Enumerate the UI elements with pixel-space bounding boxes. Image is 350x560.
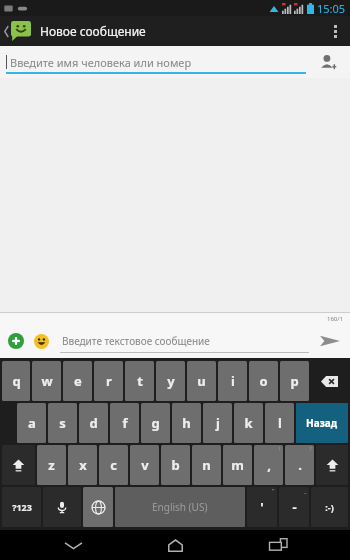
button[interactable]: u: [187, 361, 216, 401]
staticText: ,: [267, 456, 271, 474]
staticText: .: [298, 456, 302, 474]
staticText: !: [279, 445, 281, 453]
staticText: Назад: [306, 416, 338, 430]
button[interactable]: Attach: [5, 330, 27, 352]
staticText: l: [278, 414, 282, 432]
staticText: g: [151, 414, 160, 432]
staticText: -: [292, 498, 297, 516]
button[interactable]: Voice input: [43, 487, 81, 527]
staticText: z: [48, 456, 55, 474]
staticText: d: [89, 414, 98, 432]
staticText: English (US): [152, 500, 208, 514]
staticText: ?: [309, 445, 312, 453]
staticText: r: [106, 372, 112, 390]
staticText: q: [12, 372, 21, 390]
staticText: n: [202, 456, 211, 474]
button[interactable]: e: [63, 361, 92, 401]
staticText: h: [182, 414, 191, 432]
staticText: s: [59, 414, 66, 432]
staticText: i: [231, 372, 235, 390]
button[interactable]: f: [110, 403, 139, 443]
button[interactable]: Назад: [296, 403, 348, 443]
staticText: b: [171, 456, 180, 474]
button[interactable]: Введите имя человека или номер: [6, 50, 306, 74]
staticText: Введите текстовое сообщение: [62, 334, 210, 348]
staticText: x: [79, 456, 87, 474]
button[interactable]: Введите текстовое сообщение: [60, 329, 309, 353]
button[interactable]: More options: [320, 16, 350, 46]
button[interactable]: -: [279, 487, 309, 527]
staticText: 15:05: [317, 1, 346, 16]
staticText: Введите имя человека или номер: [10, 55, 192, 70]
button[interactable]: Send: [315, 326, 345, 356]
button[interactable]: c: [99, 445, 128, 485]
button[interactable]: Backspace: [311, 361, 348, 401]
button[interactable]: o: [249, 361, 278, 401]
button[interactable]: Change keyboard language: [83, 487, 113, 527]
staticText: Новое сообщение: [40, 23, 146, 39]
button[interactable]: r: [94, 361, 123, 401]
button[interactable]: h: [172, 403, 201, 443]
button[interactable]: l: [265, 403, 294, 443]
button[interactable]: n: [192, 445, 221, 485]
button[interactable]: t: [125, 361, 154, 401]
button[interactable]: w: [32, 361, 61, 401]
staticText: :-): [325, 501, 334, 513]
staticText: p: [290, 372, 299, 390]
button[interactable]: Space: [115, 487, 245, 527]
button[interactable]: Add contact: [314, 48, 342, 76]
button[interactable]: x: [68, 445, 97, 485]
button[interactable]: q: [2, 361, 30, 401]
button[interactable]: j: [203, 403, 232, 443]
staticText: _: [304, 487, 307, 495]
button[interactable]: d: [79, 403, 108, 443]
button[interactable]: Shift: [316, 445, 348, 485]
button[interactable]: ': [247, 487, 277, 527]
button[interactable]: Shift: [2, 445, 35, 485]
staticText: w: [41, 372, 53, 390]
staticText: m: [231, 456, 244, 474]
button[interactable]: p: [280, 361, 309, 401]
button[interactable]: k: [234, 403, 263, 443]
staticText: o: [259, 372, 268, 390]
staticText: a: [28, 414, 36, 432]
button[interactable]: Up: [2, 16, 32, 46]
button[interactable]: i: [218, 361, 247, 401]
staticText: y: [167, 372, 175, 390]
button[interactable]: z: [37, 445, 66, 485]
staticText: ': [260, 498, 264, 516]
button[interactable]: ?123: [2, 487, 41, 527]
button[interactable]: Recent apps: [248, 530, 308, 560]
button[interactable]: a: [17, 403, 46, 443]
button[interactable]: ,: [254, 445, 283, 485]
staticText: u: [197, 372, 206, 390]
button[interactable]: Hide keyboard: [43, 530, 103, 560]
button[interactable]: y: [156, 361, 185, 401]
staticText: 160/1: [327, 315, 343, 323]
staticText: e: [74, 372, 82, 390]
button[interactable]: Home: [145, 530, 205, 560]
staticText: k: [244, 414, 253, 432]
staticText: f: [122, 414, 128, 432]
button[interactable]: Emoji: [30, 330, 52, 352]
staticText: j: [216, 414, 220, 432]
button[interactable]: v: [130, 445, 159, 485]
button[interactable]: g: [141, 403, 170, 443]
staticText: v: [141, 456, 149, 474]
button[interactable]: :-): [311, 487, 348, 527]
button[interactable]: s: [48, 403, 77, 443]
button[interactable]: m: [223, 445, 252, 485]
staticText: ?123: [12, 501, 32, 513]
staticText: t: [137, 372, 143, 390]
button[interactable]: .: [285, 445, 314, 485]
button[interactable]: b: [161, 445, 190, 485]
staticText: c: [110, 456, 117, 474]
staticText: ": [272, 487, 275, 495]
